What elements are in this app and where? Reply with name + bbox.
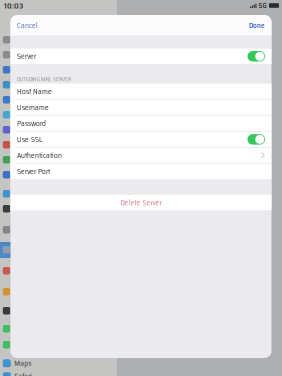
staticText: 5G xyxy=(258,0,266,11)
button[interactable]: Server xyxy=(247,51,265,61)
staticText: Cancel xyxy=(17,19,38,31)
staticText: OUTGOING MAIL SERVER xyxy=(17,75,71,84)
button[interactable]: Done xyxy=(241,14,271,36)
staticText: Maps xyxy=(14,357,31,369)
staticText: Authentication xyxy=(17,149,62,161)
staticText: Done xyxy=(249,19,265,31)
button[interactable]: Username xyxy=(10,100,271,115)
button[interactable]: Password xyxy=(10,116,271,131)
staticText: 10:03 xyxy=(4,0,23,12)
staticText: Username xyxy=(17,101,49,113)
staticText: Use SSL xyxy=(17,133,42,145)
button[interactable]: Use SSL xyxy=(247,134,265,145)
staticText: Safari xyxy=(14,370,32,376)
button[interactable]: Safari xyxy=(0,370,117,376)
staticText: Host Name xyxy=(17,85,52,97)
button[interactable]: Server Port xyxy=(10,164,271,179)
staticText: Password xyxy=(17,117,46,129)
button[interactable]: Host Name xyxy=(10,84,271,99)
staticText: Delete Server xyxy=(120,197,161,208)
button[interactable]: Cancel xyxy=(10,14,46,36)
staticText: Server xyxy=(17,50,36,62)
button[interactable]: Authentication xyxy=(10,148,271,163)
button[interactable]: Delete Server xyxy=(10,195,271,210)
button[interactable]: Maps xyxy=(0,357,117,369)
staticText: Server Port xyxy=(17,165,50,177)
